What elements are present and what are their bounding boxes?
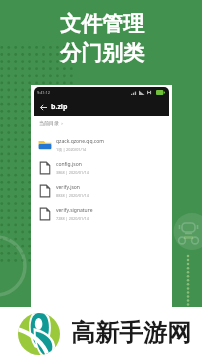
staticText: config.json — [56, 161, 82, 168]
staticText: 8838 | 2020/01/14 — [56, 193, 89, 198]
button[interactable]: config.json — [34, 156, 169, 179]
staticText: 当前目录 — [39, 120, 59, 126]
staticText: 分门别类 — [60, 40, 144, 66]
staticText: verify.json — [56, 184, 80, 191]
staticText: b.zip — [51, 102, 68, 112]
staticText: 9:41:12 — [37, 90, 50, 95]
staticText: 3868 | 2020/01/14 — [56, 170, 89, 175]
staticText: verify.signature — [56, 207, 93, 214]
button[interactable]: verify.signature — [34, 202, 169, 225]
staticText: 1项 | 2020/01/14 — [56, 147, 87, 152]
staticText: qzack.qzone.qq.com — [56, 138, 104, 145]
staticText: 高新手游网 — [71, 318, 191, 348]
button[interactable]: qzack.qzone.qq.com — [34, 133, 169, 156]
button[interactable]: verify.json — [34, 179, 169, 202]
staticText: 文件管理 — [60, 11, 144, 37]
button[interactable]: 当前目录 — [39, 120, 64, 126]
button[interactable]: Back — [38, 102, 48, 112]
staticText: > — [61, 121, 64, 126]
staticText: 7288 | 2020/01/14 — [56, 216, 89, 221]
